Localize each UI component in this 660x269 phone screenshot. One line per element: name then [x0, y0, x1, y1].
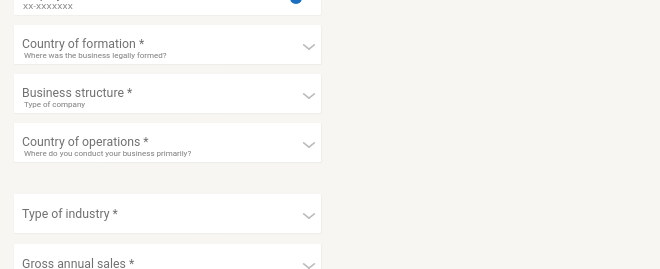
staticText: Business structure *: [22, 86, 133, 100]
staticText: Where was the business legally formed?: [24, 51, 167, 60]
other: Expand: [301, 88, 317, 104]
staticText: Country of formation *: [22, 37, 145, 51]
button[interactable]: Gross annual sales *: [14, 244, 321, 269]
other: Expand: [301, 258, 317, 269]
other: Expand: [301, 208, 317, 224]
staticText: Type of industry *: [22, 207, 118, 221]
button[interactable]: Country of formation *: [14, 25, 321, 64]
staticText: Country of operations *: [22, 135, 149, 149]
staticText: Where do you conduct your business prima…: [24, 149, 192, 158]
button[interactable]: Business structure *: [14, 74, 321, 113]
button[interactable]: Type of industry *: [14, 194, 321, 233]
staticText: XX-XXXXXXX: [23, 2, 74, 11]
button[interactable]: Country of operations *: [14, 123, 321, 162]
other: Expand: [301, 137, 317, 153]
button[interactable]: Employer identification number: [14, 0, 321, 15]
staticText: Employer identification number: [22, 0, 193, 1]
other: Expand: [301, 39, 317, 55]
staticText: Type of company: [24, 100, 86, 109]
other: Info: [290, 0, 302, 4]
staticText: Gross annual sales *: [22, 257, 135, 269]
